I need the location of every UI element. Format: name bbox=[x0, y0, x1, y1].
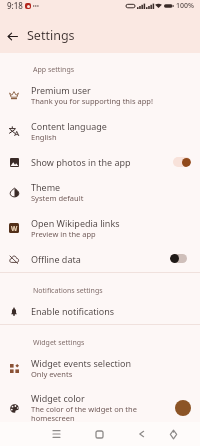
staticText: Premium user bbox=[31, 84, 91, 96]
button[interactable]: Home bbox=[88, 422, 110, 446]
staticText: Content language bbox=[31, 120, 107, 132]
staticText: W bbox=[11, 224, 18, 233]
button[interactable]: Premium user bbox=[0, 77, 200, 113]
staticText: 9:18 bbox=[7, 0, 23, 11]
staticText: Widget color bbox=[31, 392, 85, 404]
staticText: English bbox=[31, 132, 57, 142]
button[interactable]: Widget events selection bbox=[0, 350, 200, 386]
button[interactable]: Pick widget color bbox=[175, 400, 191, 416]
button[interactable]: Back bbox=[3, 27, 21, 45]
staticText: 100% bbox=[176, 1, 194, 11]
staticText: Show photos in the app bbox=[31, 156, 131, 168]
button[interactable]: Enable notifications bbox=[0, 298, 200, 323]
button[interactable]: Offline data bbox=[0, 246, 200, 271]
staticText: Offline data bbox=[31, 253, 81, 265]
button[interactable]: Menu bbox=[45, 422, 67, 446]
button[interactable]: W bbox=[0, 210, 200, 246]
button[interactable]: Back bbox=[130, 422, 152, 446]
staticText: Only events bbox=[31, 369, 73, 379]
staticText: Widget events selection bbox=[31, 357, 132, 369]
staticText: Enable notifications bbox=[31, 305, 115, 317]
button[interactable]: Show photos toggle bbox=[170, 155, 191, 168]
staticText: The color of the widget on the homescree… bbox=[31, 404, 171, 423]
staticText: System default bbox=[31, 193, 84, 203]
staticText: App settings bbox=[33, 65, 75, 75]
staticText: Thank you for supporting this app! bbox=[31, 96, 153, 106]
button[interactable]: Download bbox=[162, 422, 184, 446]
button[interactable]: Content language bbox=[0, 113, 200, 149]
staticText: Open Wikipedia links bbox=[31, 217, 120, 229]
staticText: Widget settings bbox=[33, 338, 85, 348]
button[interactable]: Show photos in the app bbox=[0, 149, 200, 174]
staticText: Settings bbox=[27, 27, 75, 44]
staticText: Theme bbox=[31, 181, 61, 193]
button[interactable]: Offline data toggle bbox=[170, 252, 191, 265]
staticText: Preview in the app bbox=[31, 229, 96, 239]
staticText: Notifications settings bbox=[33, 286, 103, 296]
button[interactable]: Widget color bbox=[0, 386, 200, 429]
button[interactable]: Theme bbox=[0, 174, 200, 210]
